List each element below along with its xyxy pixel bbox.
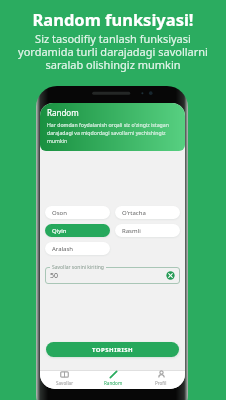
staticText: TOPSHIRISH: [92, 346, 134, 354]
button[interactable]: Qiyin: [45, 224, 110, 237]
staticText: Qiyin: [52, 227, 67, 235]
button[interactable]: Random: [89, 370, 137, 386]
staticText: Random: [104, 380, 123, 386]
staticText: O'rtacha: [122, 209, 146, 217]
staticText: Oson: [52, 209, 67, 217]
button[interactable]: Profil: [137, 370, 185, 386]
button[interactable]: TOPSHIRISH: [46, 342, 179, 357]
staticText: Profil: [155, 380, 167, 386]
staticText: Random funksiyasi!: [32, 8, 194, 30]
staticText: Siz tasodifiy tanlash funksiyasi yordami…: [13, 31, 213, 72]
staticText: 50: [50, 271, 59, 281]
button[interactable]: Clear: [166, 271, 175, 280]
button[interactable]: Savollar: [40, 370, 89, 386]
staticText: Rasmli: [122, 227, 141, 235]
staticText: Har domdan foydalanish orqali siz o'zing…: [47, 121, 180, 144]
button[interactable]: 50: [45, 267, 180, 284]
staticText: Aralash: [52, 245, 74, 253]
staticText: Savollar sonini kiriting: [52, 264, 104, 271]
button[interactable]: Rasmli: [115, 224, 180, 237]
staticText: Savollar: [56, 380, 74, 386]
staticText: Random: [47, 107, 79, 118]
button[interactable]: Oson: [45, 206, 110, 219]
button[interactable]: O'rtacha: [115, 206, 180, 219]
button[interactable]: Aralash: [45, 242, 110, 255]
